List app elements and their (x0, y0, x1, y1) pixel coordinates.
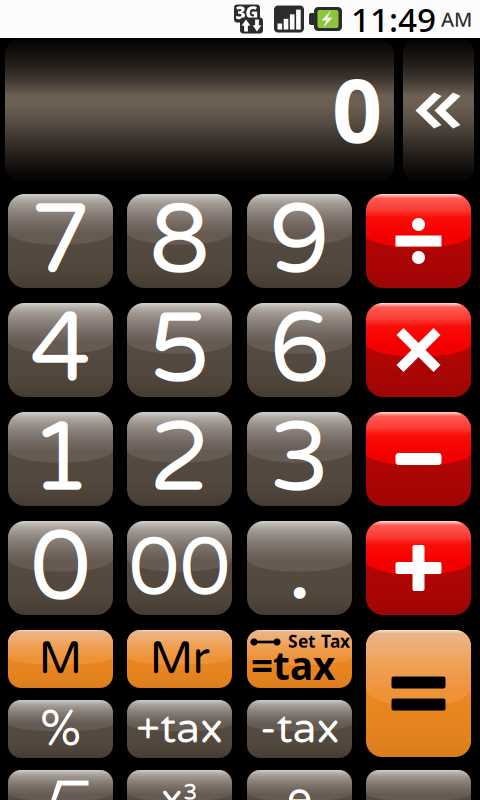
button[interactable] (366, 521, 471, 615)
staticText: 11:49 (351, 0, 436, 41)
button[interactable] (366, 194, 471, 288)
button[interactable] (8, 770, 113, 800)
button[interactable]: 4 (8, 303, 113, 397)
staticText: 0 (30, 509, 91, 627)
staticText: 6 (269, 291, 330, 409)
staticText: 3 (269, 400, 330, 518)
staticText: 9 (269, 182, 330, 300)
button[interactable]: 6 (247, 303, 352, 397)
button[interactable]: 5 (127, 303, 232, 397)
button[interactable]: 00 (127, 521, 232, 615)
button[interactable]: M (8, 630, 113, 688)
staticText: 3G (235, 1, 258, 24)
button[interactable]: . (247, 521, 352, 615)
staticText: % (40, 698, 81, 759)
button[interactable]: e (247, 770, 352, 800)
button[interactable] (366, 412, 471, 506)
button[interactable]: % (8, 700, 113, 758)
staticText: AM (441, 6, 472, 32)
staticText: Mr (149, 632, 209, 686)
staticText: =tax (251, 639, 335, 691)
staticText: +tax (136, 703, 223, 755)
staticText: -tax (259, 703, 339, 755)
staticText: 0 (332, 50, 382, 167)
staticText: e (286, 772, 312, 800)
staticText: 5 (149, 291, 210, 409)
button[interactable]: 0 (8, 521, 113, 615)
staticText: M (38, 632, 82, 686)
button[interactable]: -tax (247, 700, 352, 758)
staticText: 8 (149, 182, 210, 300)
button[interactable] (366, 770, 471, 800)
button[interactable] (366, 630, 471, 757)
button[interactable] (366, 303, 471, 397)
staticText: 2 (149, 400, 210, 518)
button[interactable]: 1 (8, 412, 113, 506)
button[interactable]: 9 (247, 194, 352, 288)
button[interactable]: Mr (127, 630, 232, 688)
button[interactable]: Set Tax (247, 630, 352, 688)
staticText: Set Tax (288, 629, 350, 652)
staticText: 7 (30, 182, 91, 300)
button[interactable]: 8 (127, 194, 232, 288)
button[interactable]: Backspace (403, 39, 474, 182)
staticText: 4 (30, 291, 91, 409)
staticText: . (287, 509, 312, 627)
staticText: x³ (161, 775, 198, 800)
button[interactable]: 2 (127, 412, 232, 506)
button[interactable]: 3 (247, 412, 352, 506)
button[interactable]: +tax (127, 700, 232, 758)
button[interactable]: 7 (8, 194, 113, 288)
button[interactable]: x³ (127, 770, 232, 800)
staticText: 00 (128, 519, 230, 617)
staticText: 1 (30, 400, 91, 518)
